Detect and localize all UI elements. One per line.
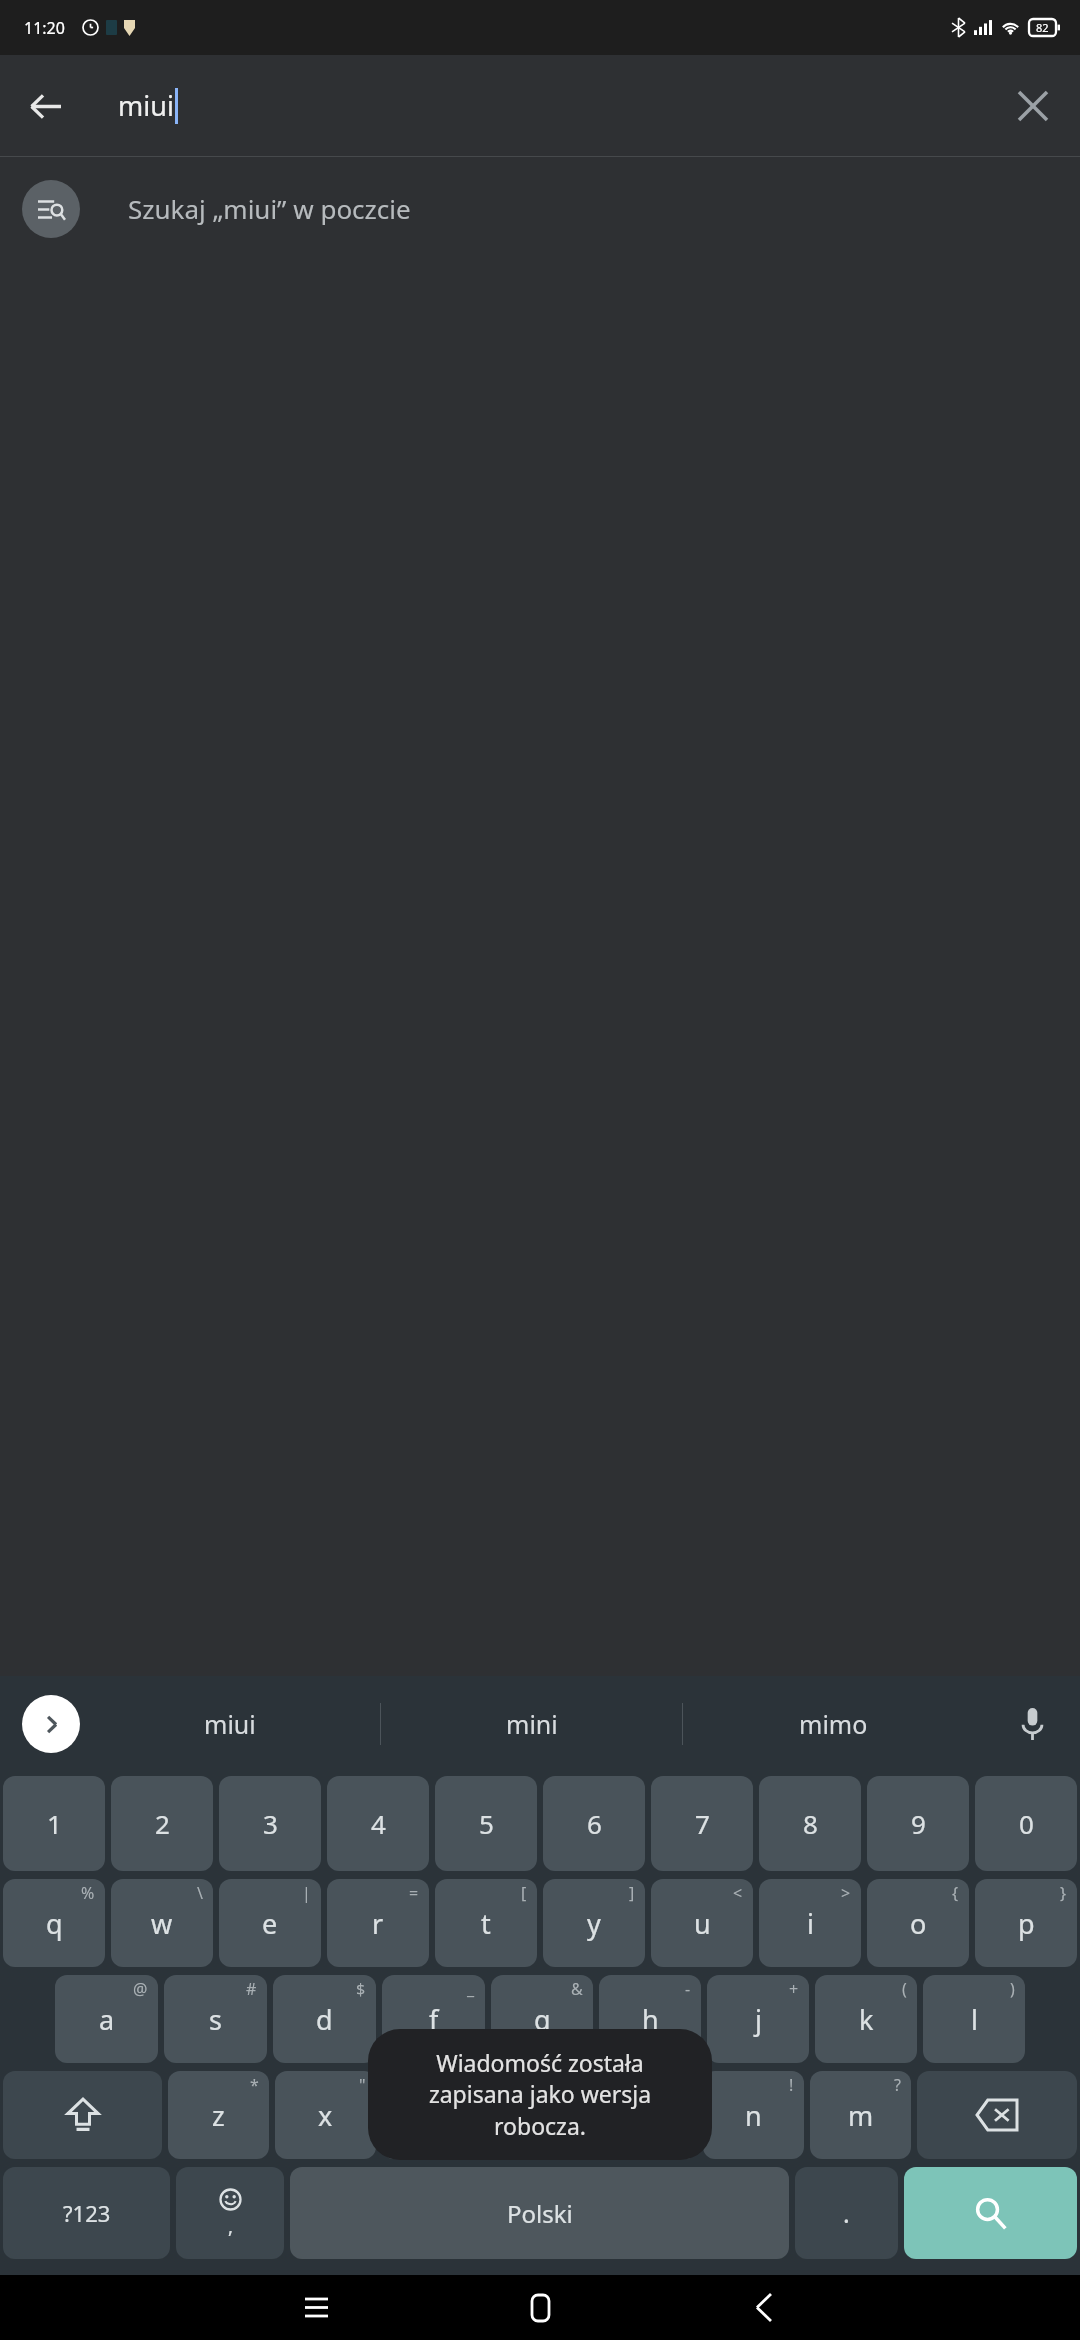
staticText: 5 [479, 1806, 494, 1841]
staticText: o [910, 1905, 927, 1942]
staticText: 4 [371, 1806, 386, 1841]
button[interactable]: w [111, 1879, 213, 1967]
staticText: " [359, 2074, 366, 2096]
button[interactable]: 2 [111, 1776, 213, 1871]
button[interactable]: j [707, 1975, 809, 2063]
staticText: m [848, 2097, 874, 2134]
button[interactable]: v [489, 2071, 590, 2159]
staticText: @ [133, 1978, 148, 2000]
button[interactable]: h [599, 1975, 701, 2063]
button[interactable]: miui [80, 1676, 380, 1772]
staticText: 6 [587, 1806, 602, 1841]
button[interactable]: o [867, 1879, 969, 1967]
staticText: v [533, 2097, 547, 2134]
staticText: u [694, 1905, 711, 1942]
button[interactable]: b [596, 2071, 697, 2159]
button[interactable]: l [923, 1975, 1025, 2063]
button[interactable]: mimo [683, 1676, 984, 1772]
button[interactable]: Search [904, 2167, 1077, 2259]
button[interactable]: Back [12, 73, 78, 139]
staticText: ?123 [63, 2198, 111, 2228]
button[interactable]: 3 [219, 1776, 321, 1871]
staticText: 7 [695, 1806, 710, 1841]
button[interactable]: 5 [435, 1776, 537, 1871]
button[interactable]: d [273, 1975, 376, 2063]
staticText: b [638, 2097, 655, 2134]
staticText: > [841, 1882, 851, 1904]
button[interactable]: g [491, 1975, 593, 2063]
staticText: * [250, 2074, 259, 2096]
staticText: = [409, 1882, 419, 1904]
button[interactable]: 8 [759, 1776, 861, 1871]
staticText: x [318, 2097, 333, 2134]
staticText: e [262, 1905, 278, 1942]
button[interactable]: t [435, 1879, 537, 1967]
button[interactable]: c [382, 2071, 483, 2159]
staticText: z [212, 2097, 225, 2134]
staticText: ( [902, 1978, 907, 2000]
button[interactable]: i [759, 1879, 861, 1967]
button[interactable]: 6 [543, 1776, 645, 1871]
staticText: . [843, 2196, 850, 2230]
button[interactable]: Shift [3, 2071, 162, 2159]
button[interactable]: Polski [290, 2167, 789, 2259]
button[interactable]: p [975, 1879, 1077, 1967]
button[interactable]: n [703, 2071, 804, 2159]
staticText: 11:20 [24, 17, 65, 39]
button[interactable]: k [815, 1975, 917, 2063]
staticText: a [99, 2001, 115, 2038]
button[interactable]: Recents [204, 2275, 428, 2340]
staticText: [ [521, 1882, 527, 1904]
staticText: i [807, 1905, 814, 1942]
button[interactable]: More suggestions [22, 1695, 80, 1753]
staticText: 2 [155, 1806, 170, 1841]
staticText: 0 [1019, 1806, 1034, 1841]
button[interactable]: 9 [867, 1776, 969, 1871]
button[interactable]: 4 [327, 1776, 429, 1871]
staticText: t [481, 1905, 491, 1942]
button[interactable]: e [219, 1879, 321, 1967]
button[interactable]: s [164, 1975, 267, 2063]
button[interactable]: Emoji [176, 2167, 284, 2259]
staticText: # [246, 1978, 257, 2000]
button[interactable]: Backspace [917, 2071, 1077, 2159]
staticText: 1 [47, 1806, 62, 1841]
staticText: - [685, 1978, 691, 2000]
button[interactable]: a [55, 1975, 158, 2063]
staticText: 3 [263, 1806, 278, 1841]
staticText: w [151, 1905, 173, 1942]
button[interactable]: ?123 [3, 2167, 170, 2259]
button[interactable]: 7 [651, 1776, 753, 1871]
staticText: + [789, 1978, 799, 2000]
button[interactable]: u [651, 1879, 753, 1967]
button[interactable]: Home [428, 2275, 652, 2340]
button[interactable]: q [3, 1879, 105, 1967]
button[interactable]: f [382, 1975, 485, 2063]
button[interactable]: z [168, 2071, 269, 2159]
button[interactable]: x [275, 2071, 376, 2159]
button[interactable]: . [795, 2167, 898, 2259]
button[interactable]: Voice input [984, 1676, 1080, 1772]
staticText: g [534, 2001, 551, 2038]
staticText: j [755, 2001, 762, 2038]
staticText: q [46, 1905, 63, 1942]
staticText: \ [197, 1882, 203, 1904]
staticText: $ [356, 1978, 366, 2000]
staticText: h [642, 2001, 659, 2038]
button[interactable]: 0 [975, 1776, 1077, 1871]
staticText: < [733, 1882, 743, 1904]
staticText: d [316, 2001, 333, 2038]
staticText: s [209, 2001, 222, 2038]
button[interactable]: mini [381, 1676, 682, 1772]
button[interactable]: Szukaj „miui” w poczcie [0, 157, 1080, 260]
staticText: y [587, 1905, 601, 1942]
button[interactable]: 1 [3, 1776, 105, 1871]
staticText: Wiadomość została zapisana jako wersja r… [394, 2047, 686, 2142]
button[interactable]: y [543, 1879, 645, 1967]
button[interactable]: r [327, 1879, 429, 1967]
button[interactable]: Back [652, 2275, 876, 2340]
button[interactable]: m [810, 2071, 911, 2159]
button[interactable]: Clear search [1000, 73, 1066, 139]
staticText: 9 [911, 1806, 926, 1841]
